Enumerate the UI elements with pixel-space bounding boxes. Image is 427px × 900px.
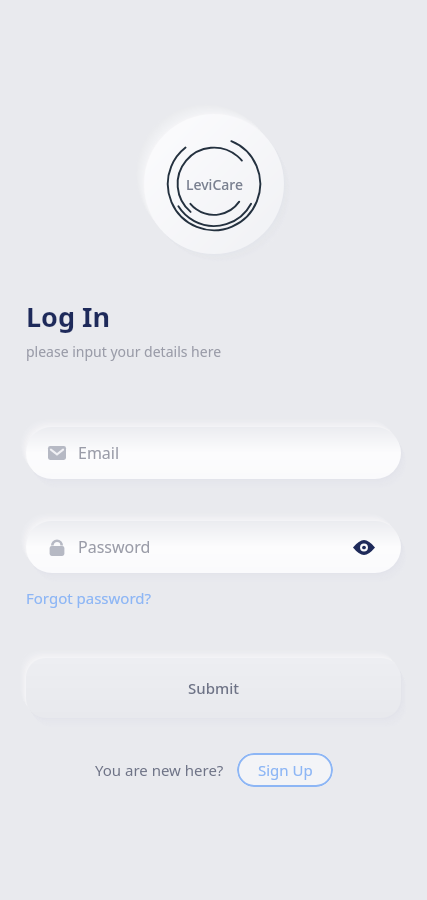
- button[interactable]: Show password: [349, 532, 379, 562]
- staticText: Forgot password?: [26, 588, 152, 608]
- staticText: LeviCare: [186, 175, 243, 194]
- button[interactable]: Email: [26, 427, 401, 479]
- staticText: Password: [78, 536, 349, 558]
- staticText: You are new here?: [95, 760, 224, 780]
- staticText: please input your details here: [26, 342, 222, 361]
- button[interactable]: Submit: [26, 658, 401, 718]
- staticText: Submit: [188, 678, 239, 698]
- button[interactable]: Password: [26, 521, 401, 573]
- staticText: Email: [78, 442, 379, 464]
- staticText: Log In: [26, 298, 111, 335]
- button[interactable]: Forgot password?: [26, 586, 152, 610]
- button[interactable]: Sign Up: [237, 753, 333, 787]
- staticText: Sign Up: [258, 760, 313, 780]
